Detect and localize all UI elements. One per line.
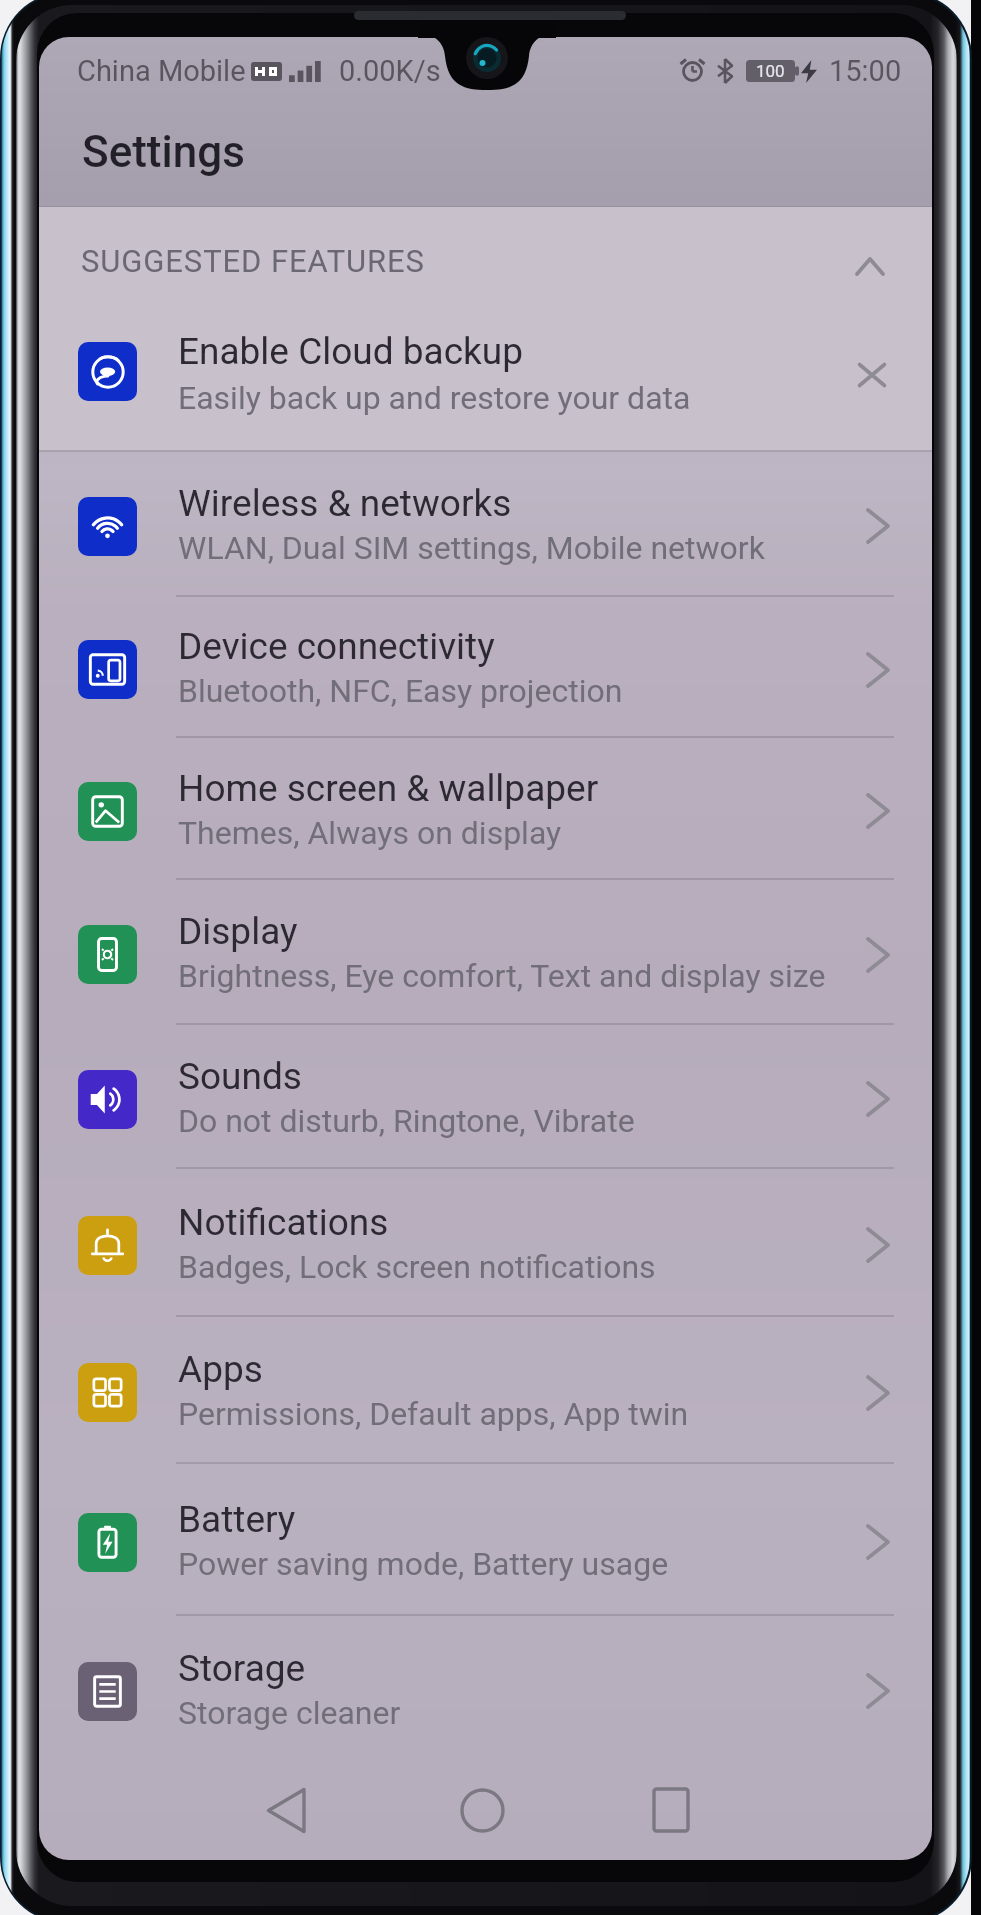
staticText: Power saving mode, Battery usage: [178, 1545, 669, 1583]
staticText: Home screen & wallpaper: [178, 767, 599, 810]
button[interactable]: Device connectivity: [39, 597, 932, 738]
staticText: SUGGESTED FEATURES: [81, 243, 425, 279]
button[interactable]: Battery: [39, 1464, 932, 1616]
button[interactable]: Apps: [39, 1317, 932, 1464]
staticText: 0.00K/s: [339, 54, 441, 88]
staticText: Bluetooth, NFC, Easy projection: [178, 672, 623, 710]
staticText: Device connectivity: [178, 625, 495, 668]
button[interactable]: Display: [39, 880, 932, 1025]
staticText: Settings: [82, 126, 245, 178]
staticText: WLAN, Dual SIM settings, Mobile network: [178, 529, 765, 567]
button[interactable]: Wireless & networks: [39, 451, 932, 597]
staticText: Brightness, Eye comfort, Text and displa…: [178, 957, 826, 995]
staticText: Themes, Always on display: [178, 814, 562, 852]
staticText: Badges, Lock screen notifications: [178, 1248, 656, 1286]
staticText: 15:00: [829, 54, 902, 88]
staticText: 100: [756, 61, 785, 81]
staticText: Storage: [178, 1647, 306, 1690]
other: Dismiss suggestion: [858, 363, 886, 387]
staticText: Display: [178, 910, 298, 953]
staticText: Wireless & networks: [178, 482, 512, 525]
staticText: Permissions, Default apps, App twin: [178, 1395, 689, 1433]
button[interactable]: Back: [231, 1755, 341, 1860]
other: Collapse suggested features: [855, 257, 885, 276]
button[interactable]: Sounds: [39, 1025, 932, 1169]
staticText: Battery: [178, 1498, 296, 1541]
staticText: Easily back up and restore your data: [178, 379, 691, 417]
button[interactable]: Notifications: [39, 1169, 932, 1317]
button[interactable]: Recent apps: [616, 1755, 726, 1860]
staticText: Notifications: [178, 1201, 389, 1244]
button[interactable]: Enable Cloud backup: [39, 298, 932, 450]
staticText: Sounds: [178, 1055, 302, 1098]
staticText: China Mobile: [77, 54, 246, 88]
staticText: Do not disturb, Ringtone, Vibrate: [178, 1102, 635, 1140]
staticText: Enable Cloud backup: [178, 330, 523, 373]
button[interactable]: SUGGESTED FEATURES: [39, 200, 932, 298]
button[interactable]: Home screen & wallpaper: [39, 738, 932, 880]
staticText: Storage cleaner: [178, 1694, 401, 1732]
button[interactable]: Storage: [39, 1616, 932, 1762]
staticText: Apps: [178, 1348, 263, 1391]
button[interactable]: Home: [427, 1755, 537, 1860]
